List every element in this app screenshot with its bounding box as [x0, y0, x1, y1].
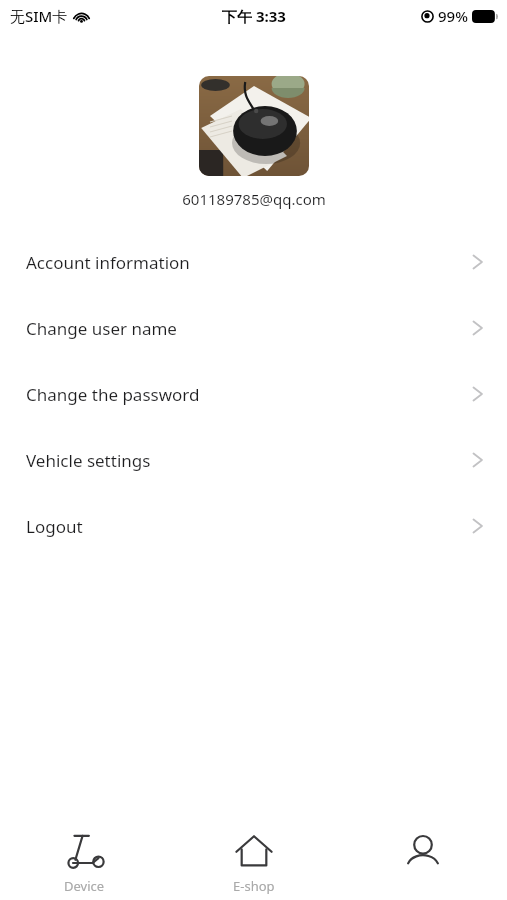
staticText: Change user name: [26, 317, 177, 340]
staticText: Device: [64, 877, 105, 895]
button[interactable]: Change user name: [0, 295, 507, 361]
staticText: E-shop: [233, 877, 275, 895]
button[interactable]: E-shop: [169, 822, 338, 900]
button[interactable]: Change the password: [0, 361, 507, 427]
staticText: Vehicle settings: [26, 449, 151, 472]
staticText: Change the password: [26, 383, 200, 406]
staticText: 无SIM卡: [10, 6, 68, 26]
button[interactable]: Profile photo: [199, 76, 309, 176]
staticText: Account information: [26, 251, 190, 274]
button[interactable]: Profile: [338, 822, 507, 900]
button[interactable]: Logout: [0, 493, 507, 559]
button[interactable]: Account information: [0, 229, 507, 295]
button[interactable]: Vehicle settings: [0, 427, 507, 493]
staticText: 99%: [438, 6, 468, 26]
staticText: 下午 3:33: [222, 6, 286, 26]
staticText: 601189785@qq.com: [182, 189, 326, 209]
button[interactable]: Device: [0, 822, 169, 900]
staticText: Logout: [26, 515, 83, 538]
